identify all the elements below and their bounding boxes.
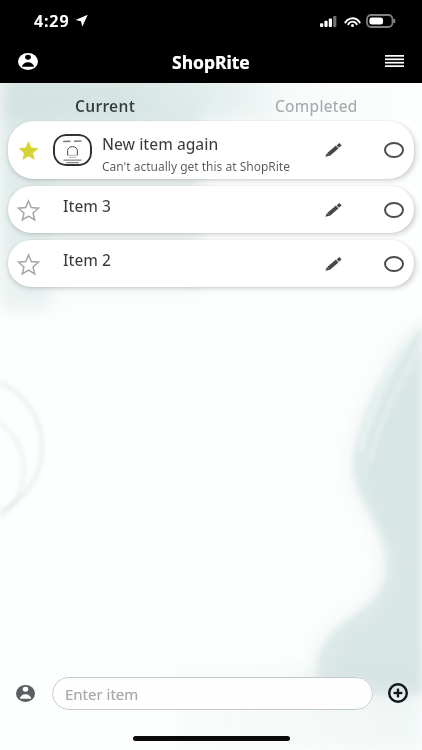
button[interactable]: Favourite xyxy=(8,121,414,179)
button[interactable]: Account xyxy=(8,676,42,710)
staticText: Item 2 xyxy=(63,249,111,270)
staticText: Can't actually get this at ShopRite xyxy=(102,158,290,174)
button[interactable]: Mark complete xyxy=(378,194,410,226)
button[interactable]: Edit xyxy=(317,194,349,226)
button[interactable]: Favourite xyxy=(12,134,44,166)
button[interactable]: Edit xyxy=(317,134,349,166)
button[interactable]: Add item xyxy=(382,677,414,709)
button[interactable]: Completed xyxy=(211,91,422,119)
button[interactable]: Favourite xyxy=(8,186,414,233)
button[interactable]: Edit xyxy=(317,248,349,280)
button[interactable]: Favourite xyxy=(12,248,44,280)
button[interactable]: Current xyxy=(0,91,211,119)
staticText: Item 3 xyxy=(63,195,111,216)
staticText: ShopRite xyxy=(172,50,250,74)
button[interactable]: Enter item xyxy=(52,677,373,710)
staticText: Current xyxy=(75,95,136,116)
button[interactable]: Favourite xyxy=(12,194,44,226)
button[interactable]: Mark complete xyxy=(378,248,410,280)
staticText: 4:29 xyxy=(34,10,70,32)
button[interactable]: Mark complete xyxy=(378,134,410,166)
button[interactable]: Account xyxy=(10,43,46,79)
button[interactable]: Favourite xyxy=(8,240,414,287)
staticText: Enter item xyxy=(65,684,139,704)
button[interactable]: Menu xyxy=(376,43,412,79)
staticText: Completed xyxy=(275,95,358,116)
staticText: New item again xyxy=(102,133,219,154)
